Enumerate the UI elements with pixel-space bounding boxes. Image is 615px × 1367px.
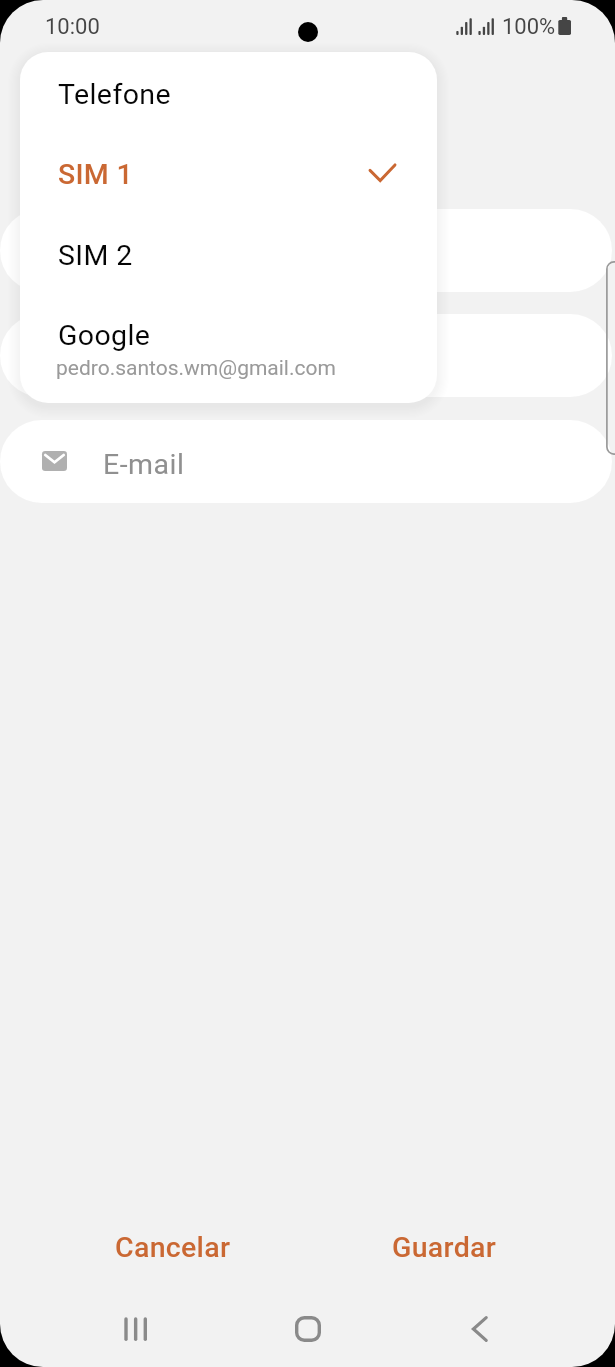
staticText: Telefone xyxy=(58,78,171,111)
staticText: Guardar xyxy=(392,1231,497,1264)
staticText: E-mail xyxy=(103,448,185,481)
button[interactable] xyxy=(0,314,612,397)
staticText: SIM 2 xyxy=(58,239,133,272)
button[interactable]: SIM 2 xyxy=(20,226,437,298)
button[interactable]: Back xyxy=(420,1290,540,1367)
button[interactable]: Home xyxy=(248,1290,368,1367)
button[interactable]: Telefone xyxy=(20,60,437,132)
button[interactable]: SIM 1 xyxy=(20,144,437,216)
button[interactable] xyxy=(0,209,612,292)
button[interactable]: Guardar xyxy=(374,1222,514,1272)
button[interactable]: Cancelar xyxy=(103,1222,243,1272)
staticText: Cancelar xyxy=(115,1231,231,1264)
staticText: 100% xyxy=(502,14,556,40)
staticText: 10:00 xyxy=(45,14,100,40)
staticText: SIM 1 xyxy=(58,158,134,191)
button[interactable]: Google xyxy=(20,306,437,403)
staticText: pedro.santos.wm@gmail.com xyxy=(56,356,336,381)
button[interactable]: E-mail xyxy=(0,420,612,503)
staticText: Google xyxy=(58,319,151,352)
button[interactable]: Recent apps xyxy=(76,1290,196,1367)
